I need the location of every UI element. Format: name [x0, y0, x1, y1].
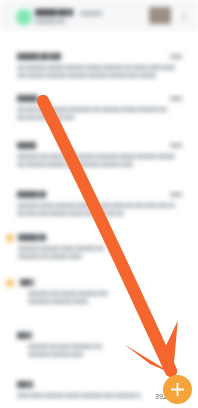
button[interactable] [0, 279, 198, 321]
button[interactable]: Compose [163, 375, 192, 404]
button[interactable] [0, 332, 198, 374]
staticText: 392 [155, 392, 168, 402]
button[interactable] [0, 191, 198, 233]
button[interactable] [0, 234, 198, 276]
button[interactable] [0, 142, 198, 184]
button[interactable] [0, 381, 198, 408]
button[interactable] [0, 0, 198, 31]
button[interactable] [0, 95, 198, 137]
button[interactable] [0, 53, 198, 95]
